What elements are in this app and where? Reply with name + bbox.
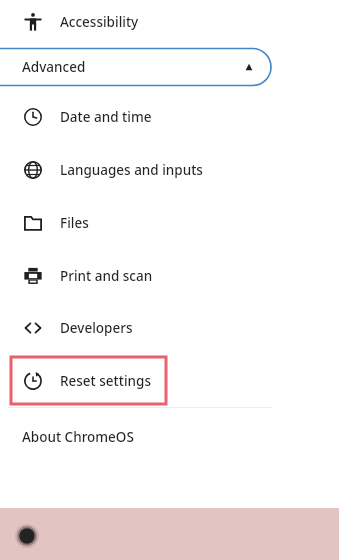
staticText: Files bbox=[60, 214, 89, 232]
button[interactable]: About ChromeOS bbox=[0, 408, 339, 466]
button[interactable]: Accessibility bbox=[0, 0, 339, 44]
staticText: Print and scan bbox=[60, 267, 153, 285]
button[interactable]: Date and time bbox=[0, 90, 339, 143]
staticText: Developers bbox=[60, 319, 133, 337]
staticText: Date and time bbox=[60, 108, 152, 126]
button[interactable]: Files bbox=[0, 196, 339, 249]
staticText: Reset settings bbox=[60, 372, 151, 390]
button[interactable]: Advanced bbox=[0, 44, 339, 90]
staticText: Languages and inputs bbox=[60, 161, 203, 179]
staticText: Advanced bbox=[22, 58, 86, 76]
staticText: About ChromeOS bbox=[22, 428, 134, 446]
button[interactable]: Print and scan bbox=[0, 249, 339, 302]
staticText: Accessibility bbox=[60, 13, 139, 31]
button[interactable]: Reset settings bbox=[11, 357, 166, 404]
button[interactable]: Home bbox=[12, 521, 42, 551]
button[interactable]: Languages and inputs bbox=[0, 143, 339, 196]
button[interactable]: Developers bbox=[0, 302, 339, 353]
